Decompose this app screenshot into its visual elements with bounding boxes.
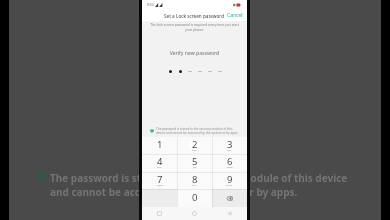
- staticText: JKL: [193, 166, 197, 169]
- staticText: The lock screen password is required eve…: [148, 22, 241, 32]
- button[interactable]: 7: [142, 171, 177, 189]
- staticText: GHI: [157, 166, 162, 169]
- staticText: 5: [192, 155, 198, 168]
- staticText: 8: [192, 173, 198, 186]
- staticText: 0: [192, 191, 198, 204]
- staticText: 2: [192, 138, 198, 151]
- staticText: TUV: [192, 184, 197, 187]
- staticText: Set a Lock screen password: [164, 13, 225, 19]
- button[interactable]: Cancel: [225, 11, 247, 20]
- button[interactable]: Backspace: [212, 189, 247, 207]
- staticText: 1: [157, 138, 163, 151]
- button[interactable]: Home: [177, 207, 212, 220]
- staticText: MNO: [227, 166, 233, 169]
- button[interactable]: 9: [212, 171, 247, 189]
- button[interactable]: Empty: [142, 189, 177, 207]
- button[interactable]: 4: [142, 154, 177, 171]
- staticText: DEF: [227, 149, 232, 152]
- button[interactable]: 3: [212, 137, 247, 154]
- staticText: The password is stored in the security m…: [156, 127, 241, 135]
- staticText: WXYZ: [226, 184, 233, 187]
- button[interactable]: 6: [212, 154, 247, 171]
- button[interactable]: Back: [212, 207, 247, 220]
- button[interactable]: 1: [142, 137, 177, 154]
- staticText: ABC: [192, 149, 197, 152]
- staticText: 4: [157, 155, 163, 168]
- button[interactable]: 8: [177, 171, 212, 189]
- staticText: 3: [227, 138, 233, 151]
- staticText: The password is stored in the security m…: [50, 171, 348, 199]
- staticText: 6: [227, 155, 233, 168]
- staticText: 7: [157, 173, 163, 186]
- staticText: 9: [227, 173, 233, 186]
- button[interactable]: 0: [177, 189, 212, 207]
- staticText: Cancel: [227, 12, 243, 19]
- button[interactable]: 5: [177, 154, 212, 171]
- button[interactable]: 2: [177, 137, 212, 154]
- staticText: PQRS: [157, 184, 163, 187]
- staticText: Verify new password: [142, 50, 247, 57]
- button[interactable]: Recents: [142, 207, 177, 220]
- staticText: 8:04: [147, 2, 154, 7]
